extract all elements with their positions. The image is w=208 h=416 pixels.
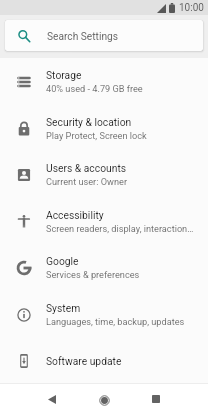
button[interactable]: Recents xyxy=(130,384,182,416)
button[interactable]: Search Settings xyxy=(5,20,203,51)
staticText: Security & location xyxy=(46,116,132,128)
button[interactable]: Home xyxy=(78,384,130,416)
staticText: Search Settings xyxy=(47,31,119,43)
button[interactable]: Accessibility xyxy=(0,198,208,245)
staticText: Google xyxy=(46,255,79,267)
staticText: Users & accounts xyxy=(46,162,127,174)
button[interactable]: Back xyxy=(26,384,78,416)
staticText: System xyxy=(46,302,81,314)
staticText: Current user: Owner xyxy=(46,176,127,187)
staticText: Services & preferences xyxy=(46,269,140,280)
staticText: Accessibility xyxy=(46,209,104,221)
button[interactable]: Security & location xyxy=(0,105,208,152)
staticText: 10:00 xyxy=(179,2,204,14)
staticText: 40% used - 4.79 GB free xyxy=(46,83,143,94)
button[interactable]: System xyxy=(0,291,208,338)
staticText: Languages, time, backup, updates xyxy=(46,316,185,327)
staticText: Play Protect, Screen lock xyxy=(46,130,147,141)
staticText: Storage xyxy=(46,69,82,81)
button[interactable]: Software update xyxy=(0,337,208,384)
button[interactable]: Storage xyxy=(0,58,208,105)
button[interactable]: Google xyxy=(0,244,208,291)
staticText: Software update xyxy=(46,355,122,367)
button[interactable]: Users & accounts xyxy=(0,151,208,198)
staticText: Screen readers, display, interaction… xyxy=(46,223,194,234)
